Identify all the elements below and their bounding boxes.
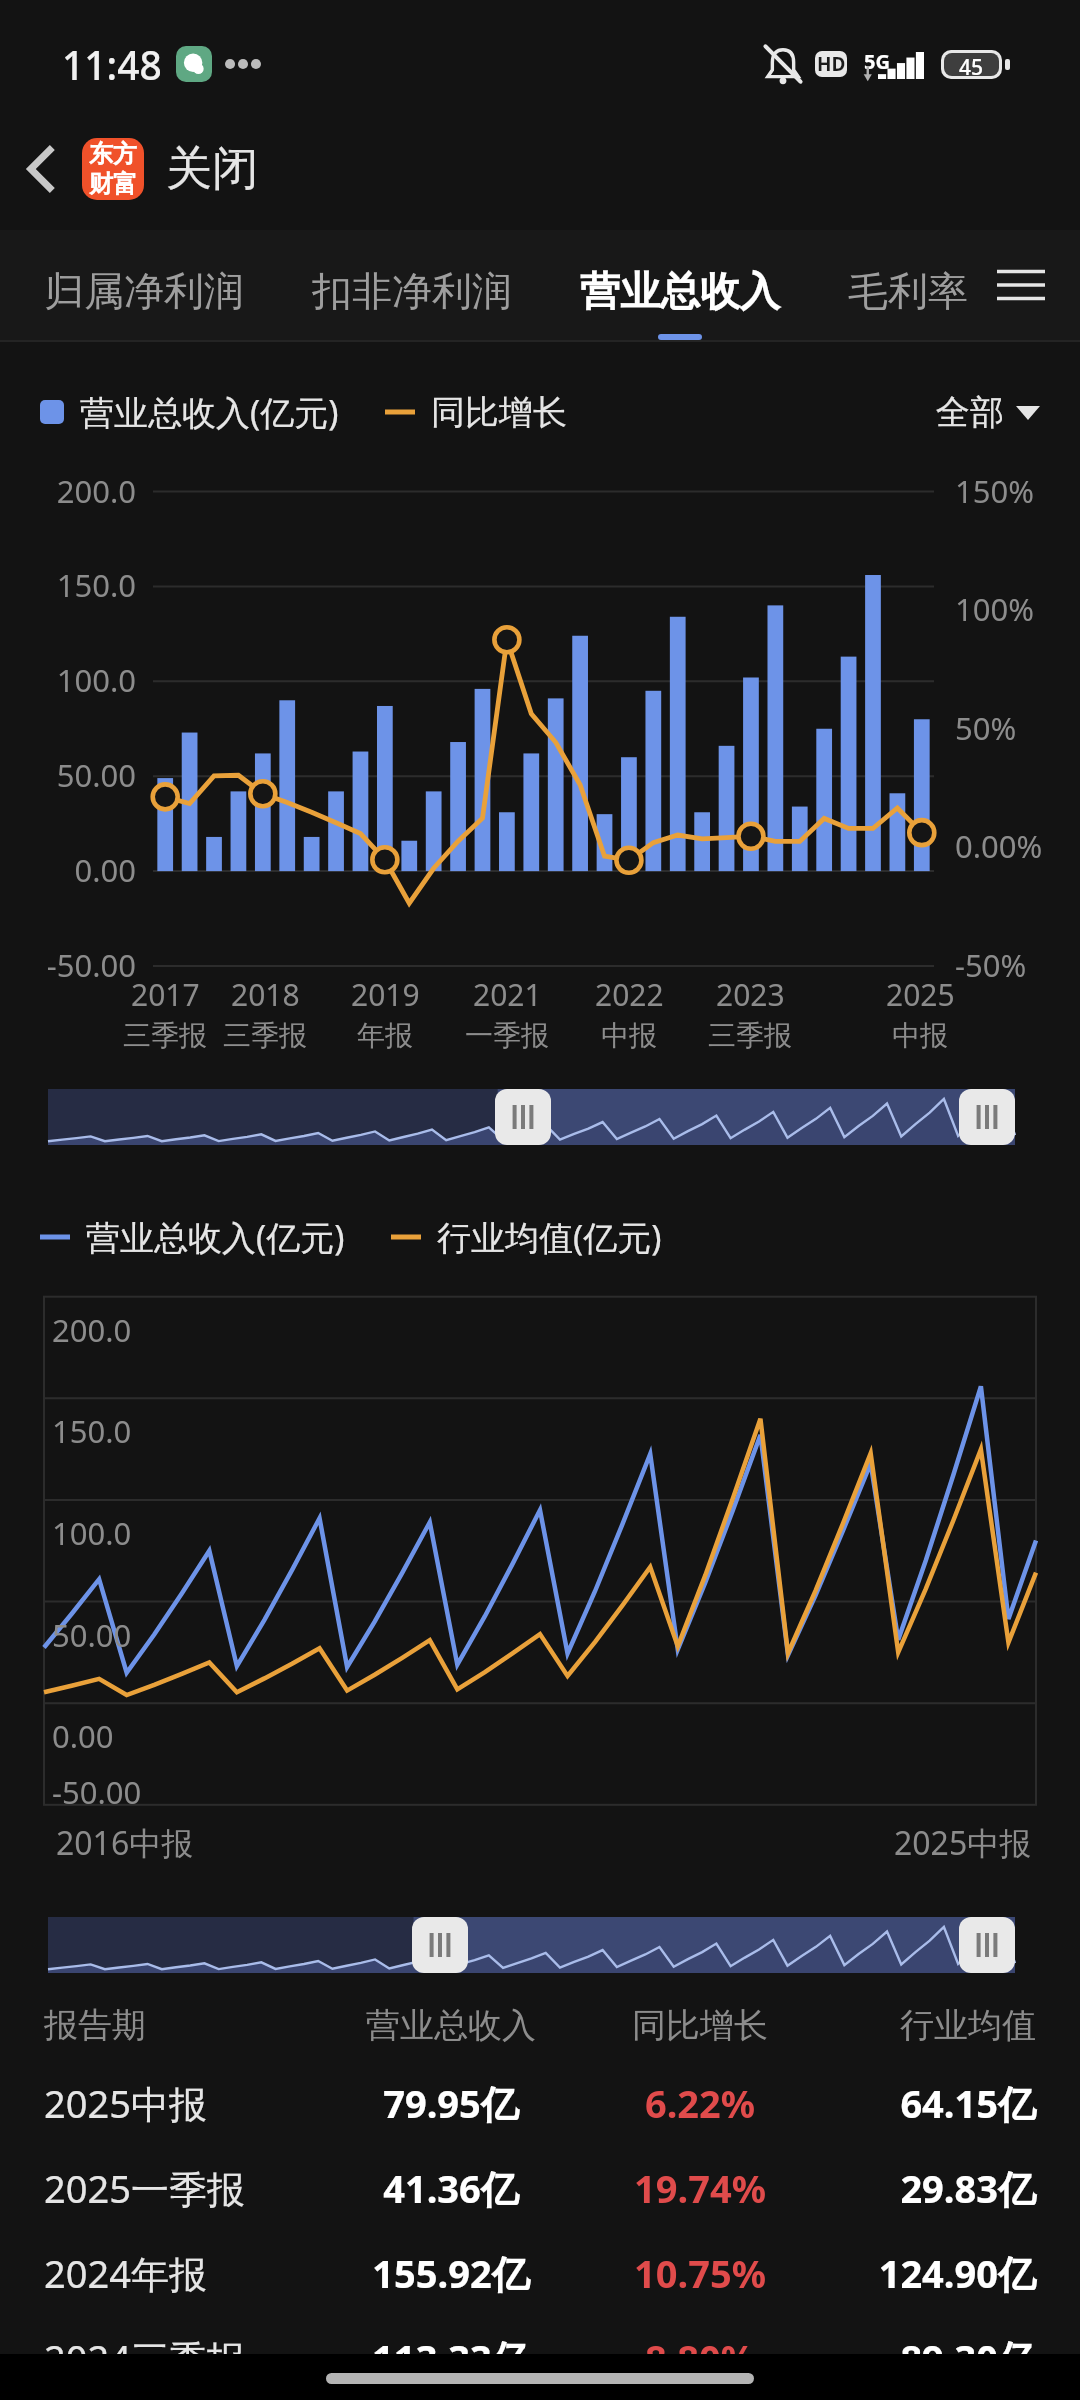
staticText: 8.80%: [588, 2332, 812, 2384]
staticText: 2017: [131, 974, 200, 1015]
staticText: 41.36亿: [314, 2162, 588, 2214]
staticText: 124.90亿: [812, 2247, 1036, 2299]
staticText: 50.00: [0, 754, 136, 796]
button[interactable]: 2025中报: [44, 2060, 1036, 2145]
staticText: 50%: [955, 707, 1017, 749]
staticText: -50.00: [52, 1771, 142, 1813]
staticText: 2022: [595, 974, 664, 1015]
staticText: 三季报: [708, 1018, 792, 1053]
staticText: 2024年报: [44, 2247, 314, 2299]
staticText: 营业总收入(亿元): [86, 1214, 345, 1260]
staticText: 64.15亿: [812, 2077, 1036, 2129]
staticText: 6.22%: [588, 2077, 812, 2129]
staticText: 150%: [955, 470, 1034, 512]
staticText: 2025: [886, 974, 955, 1015]
button[interactable]: 毛利率: [848, 230, 968, 340]
staticText: 营业总收入: [580, 266, 780, 316]
staticText: 2021: [473, 974, 542, 1015]
staticText: 同比增长: [588, 2004, 812, 2047]
staticText: 扣非净利润: [312, 266, 512, 316]
button[interactable]: Range handle: [959, 1089, 1015, 1145]
staticText: 2025中报: [44, 2077, 314, 2129]
staticText: 0.00: [52, 1715, 114, 1757]
staticText: 2024三季报: [44, 2332, 314, 2384]
staticText: 行业均值: [812, 2004, 1036, 2047]
staticText: 150.0: [0, 564, 136, 606]
staticText: 2023: [716, 974, 785, 1015]
staticText: 113.33亿: [314, 2332, 588, 2384]
staticText: -50.00: [0, 944, 136, 986]
button[interactable]: 归属净利润: [44, 230, 244, 340]
staticText: -50%: [955, 944, 1027, 986]
staticText: 100%: [955, 588, 1034, 630]
staticText: 行业均值(亿元): [437, 1214, 662, 1260]
staticText: 100.0: [0, 659, 136, 701]
staticText: 营业总收入: [314, 2004, 588, 2047]
staticText: 2016中报: [56, 1821, 194, 1865]
staticText: 150.0: [52, 1410, 132, 1452]
staticText: 79.95亿: [314, 2077, 588, 2129]
button[interactable]: 关闭: [166, 140, 258, 198]
staticText: 29.83亿: [812, 2162, 1036, 2214]
staticText: 归属净利润: [44, 266, 244, 316]
staticText: 2025中报: [894, 1821, 1032, 1865]
staticText: 中报: [892, 1018, 948, 1053]
staticText: 19.74%: [588, 2162, 812, 2214]
staticText: 报告期: [44, 2004, 314, 2047]
button[interactable]: 全部: [936, 391, 1040, 434]
staticText: HD: [817, 51, 846, 77]
staticText: 三季报: [223, 1018, 307, 1053]
button[interactable]: 2024年报: [44, 2230, 1036, 2315]
button[interactable]: Menu: [992, 256, 1050, 314]
button[interactable]: Range handle: [412, 1917, 468, 1973]
staticText: 2019: [351, 974, 420, 1015]
staticText: 89.30亿: [812, 2332, 1036, 2384]
staticText: 东方: [89, 139, 137, 169]
staticText: 50.00: [52, 1614, 132, 1656]
staticText: 年报: [357, 1018, 413, 1053]
staticText: 三季报: [123, 1018, 207, 1053]
staticText: 0.00: [0, 849, 136, 891]
staticText: 200.0: [52, 1309, 132, 1351]
button[interactable]: Range handle: [959, 1917, 1015, 1973]
staticText: 11:48: [62, 38, 162, 91]
staticText: 0.00%: [955, 825, 1043, 867]
button[interactable]: 2025一季报: [44, 2145, 1036, 2230]
staticText: 5G: [864, 48, 890, 75]
staticText: 200.0: [0, 470, 136, 512]
staticText: 财富: [89, 169, 137, 199]
button[interactable]: Range handle: [495, 1089, 551, 1145]
button[interactable]: 扣非净利润: [312, 230, 512, 340]
staticText: 2018: [231, 974, 300, 1015]
staticText: 中报: [601, 1018, 657, 1053]
staticText: 全部: [936, 391, 1004, 434]
staticText: 155.92亿: [314, 2247, 588, 2299]
staticText: 毛利率: [848, 266, 968, 316]
staticText: 10.75%: [588, 2247, 812, 2299]
staticText: 营业总收入(亿元): [80, 389, 339, 435]
staticText: 2025一季报: [44, 2162, 314, 2214]
button[interactable]: 营业总收入: [580, 230, 780, 340]
button[interactable]: 2024三季报: [44, 2315, 1036, 2400]
staticText: 100.0: [52, 1512, 132, 1554]
staticText: 一季报: [465, 1018, 549, 1053]
staticText: 同比增长: [431, 391, 567, 434]
button[interactable]: Back: [2, 129, 82, 209]
staticText: 45: [959, 53, 984, 76]
